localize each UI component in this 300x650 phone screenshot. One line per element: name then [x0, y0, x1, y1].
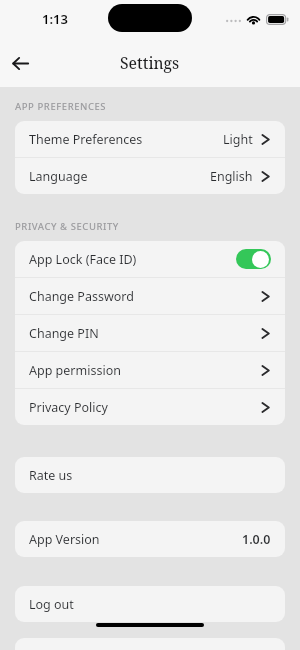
staticText: Language	[29, 168, 88, 185]
staticText: 1:13	[42, 10, 68, 28]
staticText: Settings	[120, 52, 180, 73]
staticText: App Version	[29, 531, 100, 548]
button[interactable]: App Version	[15, 521, 285, 557]
button[interactable]: Change PIN	[15, 315, 285, 351]
staticText: App permission	[29, 362, 121, 379]
staticText: Light	[223, 131, 253, 148]
staticText: PRIVACY & SECURITY	[15, 220, 119, 233]
button[interactable]: Language	[15, 158, 285, 194]
staticText: Privacy Policy	[29, 399, 108, 416]
staticText: App Lock (Face ID)	[29, 251, 137, 268]
button[interactable]: Change Password	[15, 278, 285, 314]
staticText: Change Password	[29, 288, 134, 305]
staticText: 1.0.0	[242, 531, 271, 548]
button[interactable]: Privacy Policy	[15, 389, 285, 425]
button[interactable]: Back	[7, 50, 33, 76]
button[interactable]: Log out	[15, 586, 285, 622]
button[interactable]: Rate us	[15, 457, 285, 493]
staticText: APP PREFERENCES	[15, 100, 107, 113]
staticText: Change PIN	[29, 325, 99, 342]
button[interactable]: Theme Preferences	[15, 121, 285, 157]
staticText: Theme Preferences	[29, 131, 143, 148]
staticText: Rate us	[29, 467, 73, 484]
staticText: English	[210, 168, 253, 185]
button[interactable]: App Lock (Face ID)	[15, 241, 285, 277]
staticText: Log out	[29, 596, 74, 613]
button[interactable]: App permission	[15, 352, 285, 388]
